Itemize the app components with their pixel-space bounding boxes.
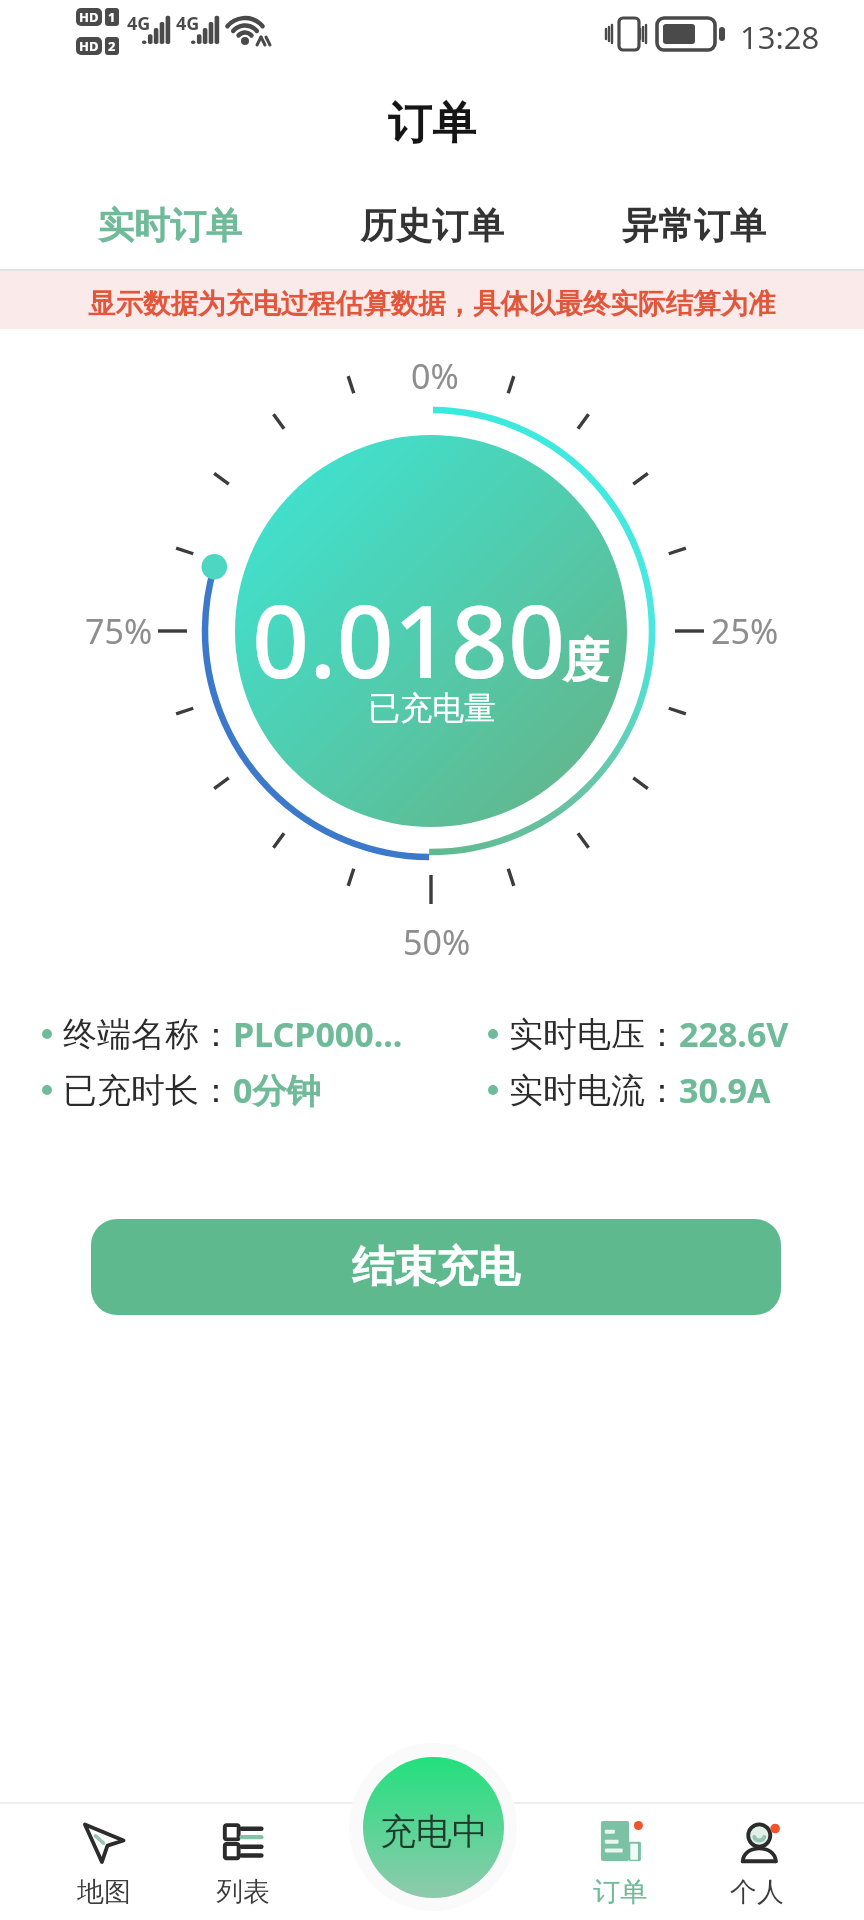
button[interactable]: 异常订单 [563,185,825,265]
staticText: 0.0180 [252,571,566,707]
staticText: 个人 [730,1875,784,1909]
staticText: 度 [562,632,609,691]
staticText: 列表 [216,1875,270,1909]
other: List [220,1821,266,1867]
staticText: 实时订单 [98,203,242,248]
staticText: 13:28 [740,16,820,58]
other: Profile [734,1821,780,1867]
button[interactable]: Profile [702,1805,812,1920]
button[interactable]: 历史订单 [301,185,563,265]
staticText: 228.6V [679,1011,789,1057]
staticText: 历史订单 [360,203,504,248]
staticText: 4G [176,11,200,36]
staticText: 75% [85,608,153,654]
staticText: HD [79,37,99,55]
staticText: 终端名称： [63,1013,233,1056]
staticText: 地图 [77,1875,131,1909]
staticText: 订单 [593,1875,647,1909]
button[interactable]: 充电中 [349,1743,517,1911]
staticText: 30.9A [679,1067,771,1113]
other: Orders [597,1821,643,1867]
staticText: 2 [108,37,116,55]
staticText: 已充时长： [63,1069,233,1112]
staticText: 实时电压： [509,1013,679,1056]
button[interactable]: 结束充电 [91,1219,781,1315]
button[interactable]: Map [49,1805,159,1920]
staticText: HD [79,8,99,26]
button[interactable]: Orders [565,1805,675,1920]
staticText: 充电中 [380,1809,488,1854]
staticText: 实时电流： [509,1069,679,1112]
staticText: 异常订单 [622,203,766,248]
staticText: 1 [108,8,116,26]
button[interactable]: 实时订单 [39,185,301,265]
staticText: 结束充电 [352,1241,520,1294]
staticText: 显示数据为充电过程估算数据，具体以最终实际结算为准 [88,287,776,322]
staticText: 50% [403,919,471,965]
staticText: 已充电量 [368,688,496,728]
staticText: 订单 [388,96,476,151]
staticText: 0% [411,353,459,399]
button[interactable]: List [188,1805,298,1920]
staticText: 0分钟 [233,1067,321,1113]
staticText: 25% [711,608,779,654]
other: Map [81,1821,127,1867]
staticText: 4G [127,11,151,36]
staticText: PLCP000... [233,1011,403,1057]
